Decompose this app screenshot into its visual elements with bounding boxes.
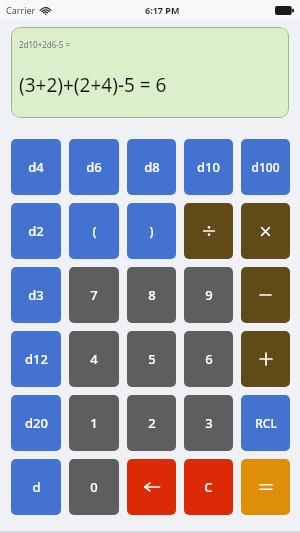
staticText: ( bbox=[92, 222, 97, 240]
button[interactable]: 5 bbox=[127, 331, 176, 387]
button[interactable]: 0 bbox=[69, 459, 119, 515]
staticText: d10 bbox=[197, 158, 220, 176]
staticText: 3 bbox=[205, 414, 213, 432]
button[interactable]: d10 bbox=[184, 139, 233, 195]
button[interactable]: 2 bbox=[127, 395, 176, 451]
staticText: d12 bbox=[25, 350, 48, 368]
staticText: 2d10+2d6-5 = bbox=[19, 39, 71, 50]
button[interactable]: 1 bbox=[69, 395, 119, 451]
button[interactable]: ) bbox=[127, 203, 176, 259]
staticText: d4 bbox=[28, 158, 44, 176]
staticText: d6 bbox=[86, 158, 102, 176]
button[interactable]: C bbox=[184, 459, 233, 515]
button[interactable]: d3 bbox=[11, 267, 61, 323]
staticText: d bbox=[32, 478, 41, 496]
button[interactable]: Plus bbox=[241, 331, 290, 387]
button[interactable]: 8 bbox=[127, 267, 176, 323]
button[interactable]: RCL bbox=[241, 395, 290, 451]
button[interactable]: 7 bbox=[69, 267, 119, 323]
staticText: 8 bbox=[148, 286, 156, 304]
staticText: 6 bbox=[205, 350, 213, 368]
button[interactable]: d6 bbox=[69, 139, 119, 195]
staticText: d2 bbox=[28, 222, 44, 240]
button[interactable]: d2 bbox=[11, 203, 61, 259]
staticText: d20 bbox=[25, 414, 48, 432]
button[interactable]: Backspace bbox=[127, 459, 176, 515]
staticText: 2 bbox=[148, 414, 156, 432]
button[interactable]: Divide bbox=[184, 203, 233, 259]
staticText: 6:17 PM bbox=[145, 4, 180, 16]
staticText: 0 bbox=[90, 478, 98, 496]
staticText: C bbox=[204, 478, 213, 496]
staticText: 1 bbox=[90, 414, 98, 432]
button[interactable]: d100 bbox=[241, 139, 290, 195]
button[interactable]: ( bbox=[69, 203, 119, 259]
staticText: 7 bbox=[90, 286, 98, 304]
button[interactable]: d20 bbox=[11, 395, 61, 451]
button[interactable]: d bbox=[11, 459, 61, 515]
staticText: ) bbox=[149, 222, 154, 240]
button[interactable]: 2d10+2d6-5 = bbox=[11, 27, 289, 118]
button[interactable]: 6 bbox=[184, 331, 233, 387]
staticText: (3+2)+(2+4)-5 = 6 bbox=[19, 72, 167, 98]
staticText: 4 bbox=[90, 350, 98, 368]
button[interactable]: Minus bbox=[241, 267, 290, 323]
button[interactable]: Equals bbox=[241, 459, 290, 515]
staticText: RCL bbox=[255, 415, 277, 431]
staticText: d3 bbox=[28, 286, 44, 304]
staticText: Carrier bbox=[6, 4, 36, 16]
button[interactable]: 9 bbox=[184, 267, 233, 323]
button[interactable]: d12 bbox=[11, 331, 61, 387]
button[interactable]: 3 bbox=[184, 395, 233, 451]
button[interactable]: 4 bbox=[69, 331, 119, 387]
staticText: d8 bbox=[144, 158, 160, 176]
staticText: 5 bbox=[148, 350, 156, 368]
staticText: 9 bbox=[205, 286, 213, 304]
button[interactable]: d4 bbox=[11, 139, 61, 195]
button[interactable]: d8 bbox=[127, 139, 176, 195]
button[interactable]: Multiply bbox=[241, 203, 290, 259]
staticText: d100 bbox=[251, 159, 280, 175]
